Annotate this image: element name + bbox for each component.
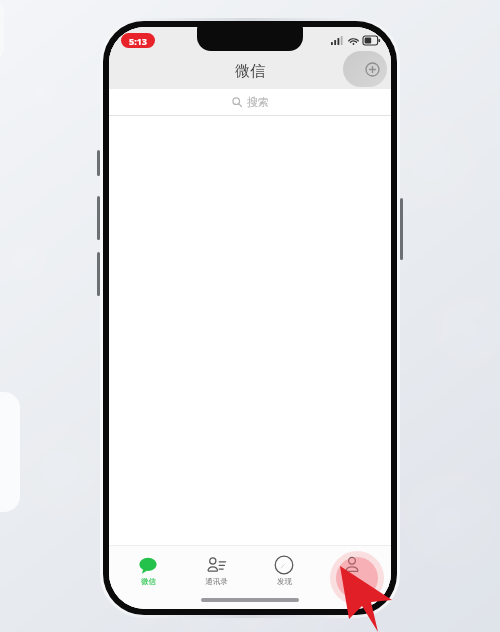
button[interactable]: 搜索 bbox=[109, 89, 391, 115]
button[interactable]: 发现 bbox=[255, 545, 313, 595]
staticText: 搜索 bbox=[247, 95, 269, 109]
staticText: 微信 bbox=[141, 577, 156, 586]
staticText: 5:13 bbox=[129, 35, 147, 47]
staticText: 通讯录 bbox=[205, 577, 228, 586]
button[interactable]: 通讯录 bbox=[187, 545, 245, 595]
staticText: 微信 bbox=[235, 62, 265, 81]
button[interactable]: 我 bbox=[323, 545, 381, 595]
button[interactable]: Add bbox=[343, 51, 387, 87]
staticText: 发现 bbox=[277, 577, 292, 586]
button[interactable]: 微信 bbox=[119, 545, 177, 595]
